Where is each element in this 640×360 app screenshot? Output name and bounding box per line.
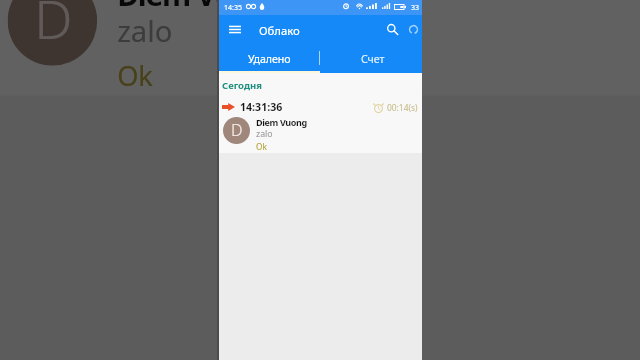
staticText: Ok <box>256 141 267 152</box>
button[interactable]: Счет <box>320 45 422 73</box>
button[interactable]: Search <box>386 23 399 36</box>
staticText: zalo <box>256 128 273 140</box>
button[interactable]: Open navigation menu <box>229 25 241 34</box>
staticText: Удалено <box>248 52 291 66</box>
button[interactable]: D <box>8 0 97 66</box>
staticText: D <box>34 0 74 56</box>
button[interactable]: Удалено <box>219 45 320 73</box>
staticText: D <box>231 119 243 141</box>
staticText: Diem Vuong <box>256 116 307 128</box>
staticText: Diem Vuong <box>117 0 286 12</box>
staticText: Облако <box>259 23 300 38</box>
staticText: 14:31:36 <box>240 100 283 114</box>
staticText: Сегодня <box>222 79 262 92</box>
staticText: zalo <box>117 13 173 52</box>
staticText: 33 <box>411 3 420 13</box>
button[interactable]: D <box>223 117 250 144</box>
staticText: 00:14(s) <box>387 102 418 113</box>
button[interactable]: Refresh <box>407 23 420 36</box>
staticText: 14:35 <box>224 3 242 13</box>
staticText: Ok <box>117 56 154 92</box>
staticText: Счет <box>361 52 385 66</box>
